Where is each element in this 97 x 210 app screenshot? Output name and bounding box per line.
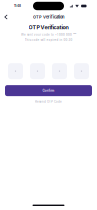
staticText: OTP Verification (33, 15, 64, 19)
button[interactable]: Back (1, 12, 10, 21)
staticText: Confirm (42, 89, 54, 92)
button[interactable]: Resend OTP Code (35, 100, 62, 103)
staticText: We sent your code to +1 888 888 *** (21, 33, 76, 36)
staticText: OTP Verification (28, 24, 68, 31)
staticText: 11:48 (14, 4, 21, 8)
staticText: This code will expired in 00:30 (24, 38, 72, 42)
staticText: Resend OTP Code (35, 100, 62, 103)
button[interactable]: Confirm (5, 85, 92, 96)
